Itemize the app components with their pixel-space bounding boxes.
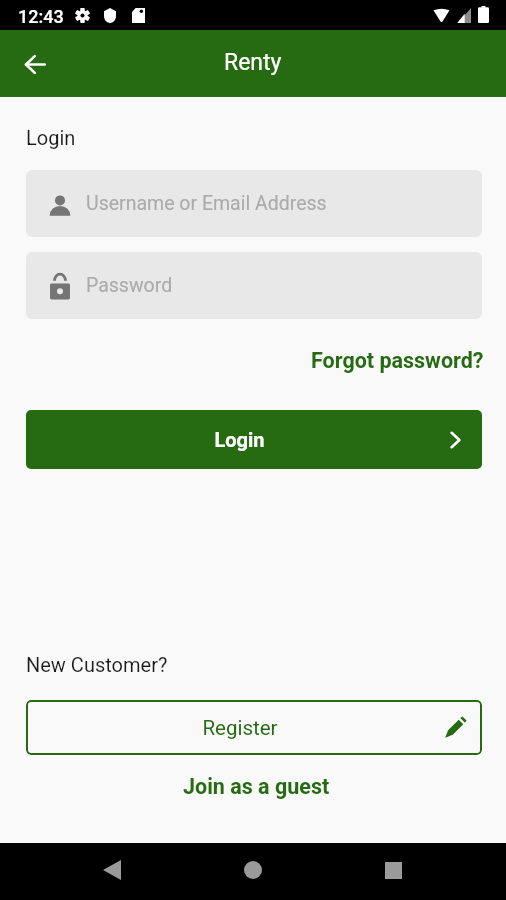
button[interactable]: Home xyxy=(229,846,277,894)
button[interactable]: Password xyxy=(26,252,482,319)
button[interactable]: Back xyxy=(88,846,136,894)
button[interactable]: Join as a guest xyxy=(3,774,506,802)
staticText: Password xyxy=(86,274,173,297)
staticText: Join as a guest xyxy=(183,774,330,799)
staticText: Renty xyxy=(224,49,282,76)
staticText: Register xyxy=(202,716,278,740)
staticText: New Customer? xyxy=(26,653,168,676)
staticText: Login xyxy=(26,126,76,149)
button[interactable]: Login xyxy=(26,410,482,469)
button[interactable]: Forgot password? xyxy=(311,348,484,373)
staticText: Username or Email Address xyxy=(86,192,327,215)
button[interactable]: Register xyxy=(26,700,482,755)
staticText: Login xyxy=(214,428,265,451)
button[interactable]: Back xyxy=(12,41,58,87)
button[interactable]: Recents xyxy=(369,846,417,894)
button[interactable]: Username or Email Address xyxy=(26,170,482,237)
staticText: Forgot password? xyxy=(311,348,484,373)
staticText: 12:43 xyxy=(18,6,64,27)
